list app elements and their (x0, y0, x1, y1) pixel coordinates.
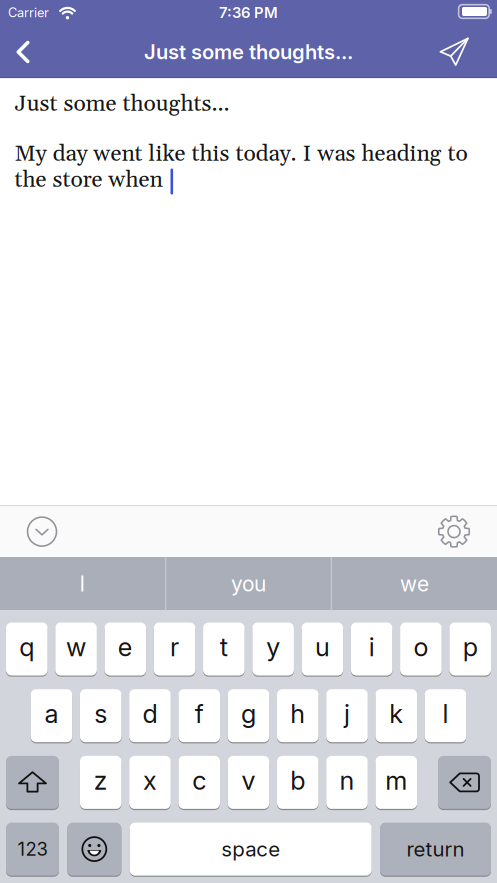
staticText: Just some thoughts... (144, 40, 353, 64)
button[interactable]: x (129, 756, 171, 809)
button[interactable]: j (326, 689, 368, 742)
staticText: i (369, 632, 375, 662)
staticText: w (66, 632, 86, 662)
button[interactable]: s (80, 689, 121, 742)
staticText: k (389, 698, 403, 729)
button[interactable] (428, 27, 480, 77)
staticText: y (266, 632, 280, 662)
button[interactable]: g (228, 689, 269, 742)
staticText: u (315, 632, 330, 662)
button[interactable]: q (6, 622, 48, 675)
staticText: p (463, 632, 478, 662)
staticText: c (192, 765, 206, 796)
staticText: j (344, 698, 350, 729)
staticText: we (400, 571, 429, 596)
staticText: m (385, 765, 407, 796)
button[interactable]: return (380, 823, 491, 876)
button[interactable]: r (154, 622, 195, 675)
button[interactable]: p (449, 622, 491, 675)
staticText: h (290, 698, 305, 729)
button[interactable] (438, 756, 491, 809)
staticText: z (94, 765, 108, 796)
button[interactable]: k (375, 689, 417, 742)
button[interactable]: l (425, 689, 466, 742)
staticText: the store when (14, 165, 168, 194)
staticText: Just some thoughts... (14, 89, 229, 118)
staticText: s (94, 698, 107, 729)
button[interactable]: v (228, 756, 269, 809)
button[interactable]: e (104, 622, 146, 675)
button[interactable]: i (351, 622, 392, 675)
staticText: return (406, 837, 464, 861)
button[interactable] (27, 517, 56, 546)
staticText: r (170, 632, 179, 662)
button[interactable]: you (166, 557, 331, 610)
staticText: you (231, 571, 266, 596)
button[interactable]: m (375, 756, 417, 809)
staticText: My day went like this today. I was headi… (14, 139, 467, 168)
staticText: 123 (17, 838, 47, 860)
staticText: space (221, 837, 280, 861)
staticText: v (241, 765, 255, 796)
button[interactable] (6, 756, 59, 809)
staticText: I (79, 571, 85, 596)
button[interactable]: space (130, 823, 372, 876)
staticText: x (143, 765, 157, 796)
button[interactable]: a (31, 689, 72, 742)
staticText: b (290, 765, 305, 796)
button[interactable]: z (80, 756, 121, 809)
button[interactable]: u (302, 622, 343, 675)
staticText: d (142, 698, 157, 729)
button[interactable]: n (326, 756, 368, 809)
button[interactable]: o (400, 622, 442, 675)
button[interactable]: w (55, 622, 97, 675)
staticText: a (44, 698, 58, 729)
staticText: e (118, 632, 133, 662)
staticText: t (220, 632, 228, 662)
staticText: Carrier (8, 5, 49, 20)
staticText: g (241, 698, 256, 729)
staticText: f (195, 698, 204, 729)
button[interactable] (67, 823, 121, 876)
button[interactable]: t (203, 622, 245, 675)
button[interactable] (3, 27, 43, 77)
staticText: 7:36 PM (219, 3, 278, 21)
button[interactable]: 123 (6, 823, 59, 876)
button[interactable]: y (252, 622, 294, 675)
staticText: q (19, 632, 34, 662)
staticText: n (339, 765, 354, 796)
button[interactable]: c (178, 756, 220, 809)
button[interactable]: we (332, 557, 497, 610)
button[interactable]: f (178, 689, 220, 742)
button[interactable]: I (0, 557, 165, 610)
staticText: l (442, 698, 448, 729)
button[interactable]: b (277, 756, 319, 809)
button[interactable]: h (277, 689, 319, 742)
staticText: o (413, 632, 428, 662)
button[interactable] (437, 515, 470, 548)
button[interactable]: d (129, 689, 171, 742)
